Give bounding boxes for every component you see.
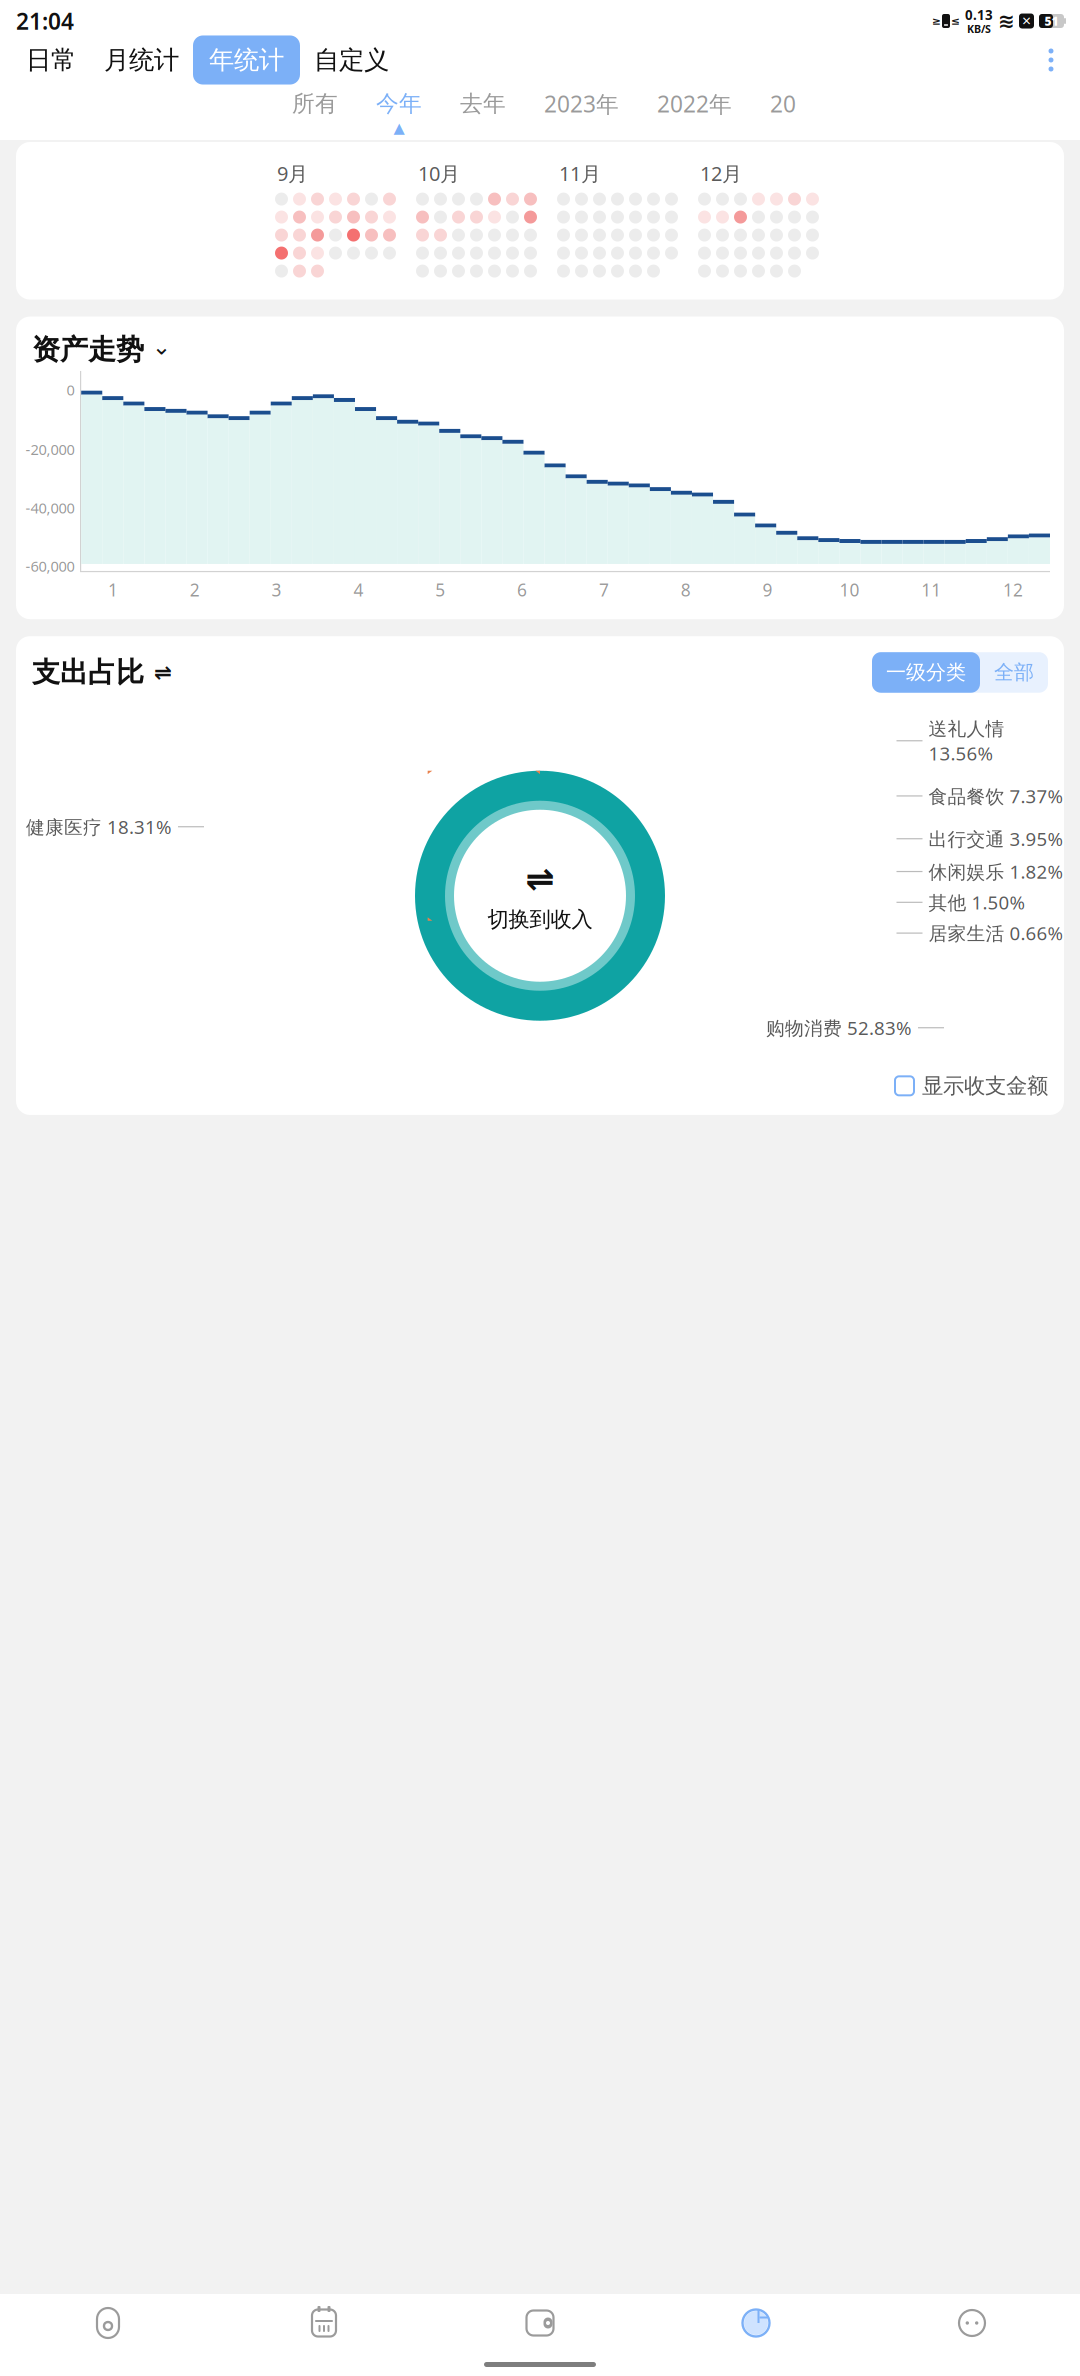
staticText: 1 bbox=[108, 578, 118, 601]
staticText: 4 bbox=[353, 578, 363, 601]
staticText: 0.13 bbox=[965, 6, 993, 24]
staticText: 购物消费 52.83% bbox=[766, 1015, 912, 1040]
staticText: ≋ bbox=[998, 10, 1015, 32]
staticText: 今年 bbox=[376, 90, 422, 118]
staticText: ≥ bbox=[932, 15, 941, 27]
staticText: 12月 bbox=[700, 160, 742, 187]
button[interactable]: ⇌ bbox=[465, 836, 615, 956]
staticText: 年统计 bbox=[209, 44, 284, 75]
staticText: 9月 bbox=[277, 160, 308, 187]
button[interactable]: 日历 bbox=[216, 2294, 432, 2352]
staticText: 休闲娱乐 1.82% bbox=[928, 859, 1063, 884]
staticText: 支出占比 bbox=[32, 655, 144, 690]
button[interactable]: 支出占比 bbox=[32, 655, 172, 690]
staticText: 切换到收入 bbox=[487, 906, 592, 932]
staticText: 一级分类 bbox=[886, 660, 966, 685]
staticText: -40,000 bbox=[25, 498, 74, 517]
staticText: 所有 bbox=[292, 90, 338, 118]
button[interactable]: 自定义 bbox=[300, 35, 403, 84]
staticText: 2023年 bbox=[544, 89, 619, 119]
staticText: 5 bbox=[435, 578, 445, 601]
button[interactable]: 全部 bbox=[980, 652, 1048, 693]
staticText: 3 bbox=[272, 578, 282, 601]
button[interactable]: 年统计 bbox=[193, 35, 300, 84]
staticText: 51 bbox=[1044, 13, 1058, 29]
button[interactable]: 2023年 bbox=[530, 89, 633, 137]
staticText: 自定义 bbox=[314, 44, 389, 75]
staticText: 2022年 bbox=[657, 89, 732, 119]
staticText: 日常 bbox=[26, 44, 76, 75]
staticText: 11月 bbox=[559, 160, 601, 187]
button[interactable]: 显示收支金额 bbox=[895, 1073, 1048, 1099]
staticText: ✕ bbox=[1021, 14, 1031, 28]
staticText: 去年 bbox=[460, 90, 506, 118]
staticText: 资产走势 bbox=[32, 333, 144, 367]
staticText: ⌄ bbox=[152, 334, 171, 360]
staticText: 12 bbox=[1003, 578, 1023, 601]
button[interactable]: 我的 bbox=[864, 2294, 1080, 2352]
staticText: 10 bbox=[839, 578, 859, 601]
button[interactable]: 所有 bbox=[278, 90, 352, 136]
staticText: 其他 1.50% bbox=[928, 890, 1025, 915]
staticText: 20 bbox=[770, 89, 796, 119]
button[interactable]: 去年 bbox=[446, 90, 520, 136]
button[interactable]: 钱包 bbox=[432, 2294, 648, 2352]
staticText: 21:04 bbox=[16, 6, 74, 36]
staticText: 食品餐饮 7.37% bbox=[928, 783, 1063, 808]
staticText: ⇌ bbox=[525, 859, 554, 898]
staticText: 全部 bbox=[994, 660, 1034, 685]
button[interactable]: 一级分类 bbox=[872, 652, 980, 693]
staticText: -20,000 bbox=[25, 439, 74, 459]
button[interactable]: 记账 bbox=[0, 2294, 216, 2352]
staticText: 6 bbox=[517, 578, 527, 601]
staticText: ≤ bbox=[951, 15, 960, 27]
staticText: 出行交通 3.95% bbox=[928, 826, 1063, 851]
staticText: 送礼人情 13.56% bbox=[928, 716, 1004, 766]
staticText: -60,000 bbox=[25, 556, 74, 576]
staticText: ⇌ bbox=[154, 660, 172, 684]
button[interactable]: 月统计 bbox=[90, 35, 193, 84]
staticText: ▲ bbox=[393, 120, 404, 136]
button[interactable]: 资产走势 bbox=[16, 317, 171, 371]
button[interactable]: 今年 bbox=[362, 90, 436, 136]
staticText: 0 bbox=[66, 380, 74, 399]
staticText: 9 bbox=[763, 578, 773, 601]
staticText: 2 bbox=[190, 578, 200, 601]
staticText: 居家生活 0.66% bbox=[928, 921, 1063, 945]
button[interactable]: 20 bbox=[756, 89, 810, 137]
staticText: 显示收支金额 bbox=[922, 1073, 1048, 1099]
staticText: 11 bbox=[921, 578, 941, 601]
staticText: 10月 bbox=[418, 160, 460, 187]
button[interactable]: 日常 bbox=[12, 35, 90, 84]
button[interactable]: 统计 bbox=[648, 2294, 864, 2352]
button[interactable]: 更多选项 bbox=[1034, 40, 1068, 80]
staticText: 8 bbox=[681, 578, 691, 601]
staticText: 月统计 bbox=[104, 44, 179, 75]
button[interactable]: 2022年 bbox=[643, 89, 746, 137]
staticText: 健康医疗 18.31% bbox=[26, 814, 172, 839]
staticText: 7 bbox=[599, 578, 609, 601]
staticText: KB/S bbox=[967, 22, 991, 36]
